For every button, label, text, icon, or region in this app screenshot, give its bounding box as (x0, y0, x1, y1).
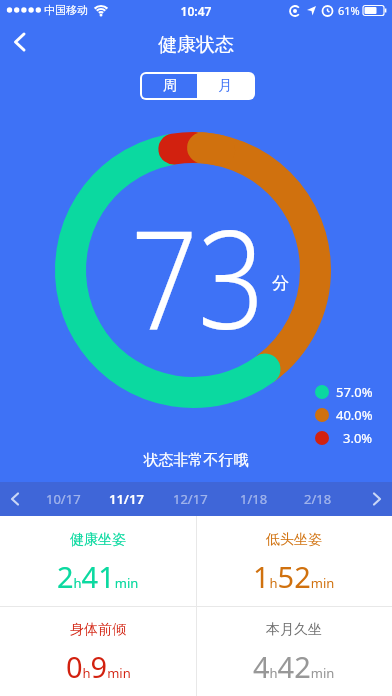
button[interactable]: 2/18 (286, 482, 350, 516)
staticText: 本月久坐 (266, 621, 322, 639)
button[interactable]: 健康坐姿 (0, 516, 196, 606)
button[interactable]: 低头坐姿 (196, 516, 392, 606)
staticText: 12/17 (173, 490, 208, 508)
button[interactable] (362, 482, 392, 516)
staticText: 2/18 (304, 490, 332, 508)
staticText: 40.0% (336, 406, 373, 424)
staticText: 低头坐姿 (266, 531, 322, 549)
staticText: 10:47 (0, 3, 392, 19)
button[interactable]: 本月久坐 (196, 606, 392, 696)
staticText: 1h52min (253, 557, 335, 596)
staticText: 周 (163, 77, 177, 95)
staticText: 0h9min (66, 647, 131, 686)
staticText: 月 (218, 77, 232, 95)
staticText: 10/17 (46, 490, 81, 508)
staticText: 11/17 (109, 490, 144, 508)
staticText: 61% (338, 3, 360, 18)
staticText: 健康状态 (158, 33, 234, 57)
button[interactable]: 月 (197, 74, 253, 98)
staticText: 中国移动 (44, 3, 88, 17)
button[interactable]: 10/17 (32, 482, 95, 516)
staticText: 73 (131, 184, 265, 369)
button[interactable]: 身体前倾 (0, 606, 196, 696)
staticText: 3.0% (343, 429, 373, 447)
staticText: 57.0% (336, 383, 373, 401)
staticText: 身体前倾 (70, 621, 126, 639)
button[interactable] (0, 20, 40, 64)
staticText: 2h41min (57, 557, 139, 596)
staticText: 1/18 (240, 490, 268, 508)
staticText: 4h42min (253, 647, 335, 686)
button[interactable] (0, 482, 30, 516)
staticText: 健康坐姿 (70, 531, 126, 549)
button[interactable]: 周 (142, 74, 197, 98)
staticText: 状态非常不行哦 (0, 451, 392, 470)
button[interactable]: 11/17 (95, 482, 158, 516)
button[interactable]: 12/17 (158, 482, 222, 516)
button[interactable]: 1/18 (222, 482, 286, 516)
staticText: 分 (272, 273, 289, 294)
